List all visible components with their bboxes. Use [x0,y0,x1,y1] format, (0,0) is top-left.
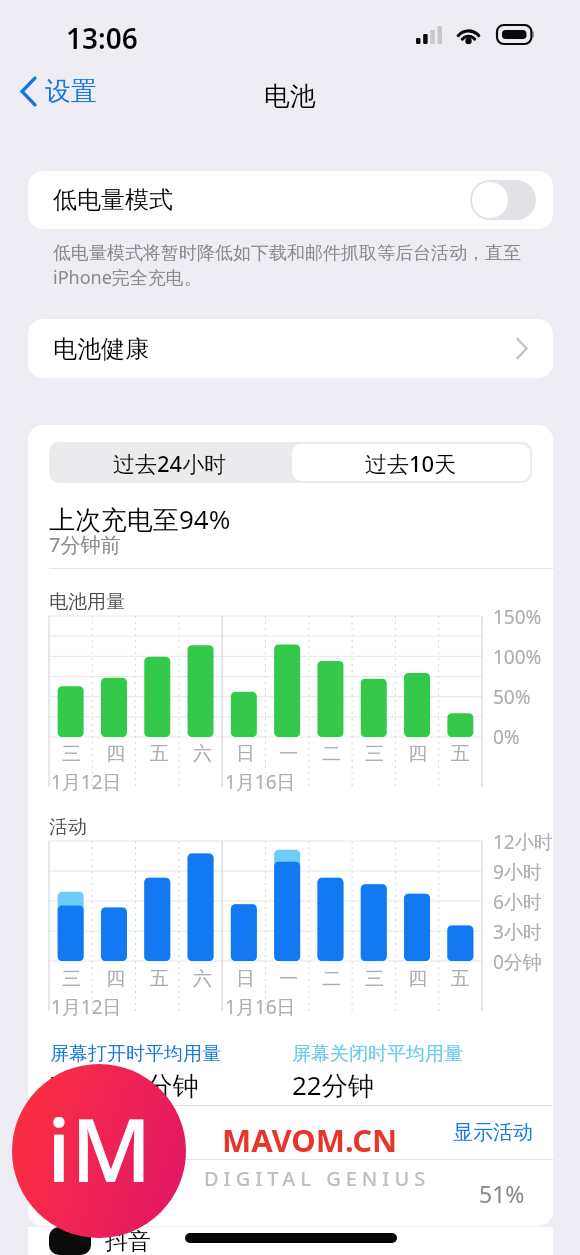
staticText: 三 [365,742,384,766]
staticText: 50% [493,684,531,710]
staticText: 1月16日 [225,994,296,1020]
staticText: 日 [236,967,255,991]
staticText: 二 [322,967,341,991]
staticText: 四 [106,967,125,991]
staticText: 上次充电至94% [49,501,231,537]
staticText: 0分钟 [493,949,542,975]
staticText: 三 [62,742,81,766]
staticText: 12小时 [493,829,553,855]
staticText: 五 [451,967,470,991]
staticText: 电池用量 [49,590,125,614]
staticText: 一 [279,967,298,991]
staticText: 7小时23分钟 [50,1067,199,1103]
staticText: 六 [193,967,212,991]
staticText: 三 [62,967,81,991]
staticText: 四 [408,967,427,991]
staticText: iM [47,1088,152,1208]
staticText: 13:06 [66,19,138,57]
staticText: DIGITAL GENIUS [204,1165,431,1192]
staticText: 四 [408,742,427,766]
staticText: 6小时 [493,889,542,915]
button[interactable]: 显示活动 [453,1120,533,1145]
staticText: 1月16日 [225,769,296,795]
button[interactable]: 过去24小时 [49,442,290,483]
staticText: 活动 [49,815,87,839]
staticText: 过去10天 [365,448,457,478]
button[interactable]: 低电量模式 [28,171,553,229]
staticText: 屏幕打开时平均用量 [50,1042,221,1066]
staticText: 三 [365,967,384,991]
staticText: 五 [150,967,169,991]
staticText: 屏幕关闭时平均用量 [292,1042,463,1066]
staticText: 22分钟 [292,1067,374,1103]
staticText: 设置 [45,75,97,108]
button[interactable]: 电池健康 [28,319,553,378]
staticText: 荣耀 [105,1179,151,1208]
button[interactable]: 抖音 [49,1227,527,1255]
staticText: 二 [322,742,341,766]
staticText: 1月12日 [51,769,122,795]
staticText: 0% [493,724,520,750]
staticText: 150% [493,604,542,630]
staticText: 100% [493,644,542,670]
staticText: 3小时 [493,919,542,945]
other: 电池健康 [516,338,528,359]
staticText: 五 [451,742,470,766]
staticText: 低电量模式将暂时降低如下载和邮件抓取等后台活动，直至iPhone完全充电。 [53,242,531,289]
button[interactable]: 荣耀 [28,1160,553,1226]
staticText: 51% [479,1178,525,1209]
staticText: 六 [193,742,212,766]
staticText: 一 [279,742,298,766]
staticText: 低电量模式 [53,185,173,215]
staticText: 1月12日 [51,994,122,1020]
staticText: 过去24小时 [113,448,227,478]
staticText: 四 [106,742,125,766]
staticText: 按App [49,1117,115,1148]
button[interactable]: 设置 [12,69,105,114]
staticText: MAVOM.CN [222,1119,398,1161]
staticText: 电池 [0,80,580,113]
staticText: 抖音 [105,1227,151,1255]
button[interactable]: 过去10天 [292,444,530,481]
staticText: 日 [236,742,255,766]
staticText: 9小时 [493,859,542,885]
staticText: 7分钟前 [49,531,121,558]
staticText: 电池健康 [53,334,149,364]
button[interactable]: 低电量模式开关 [470,180,536,220]
staticText: 五 [150,742,169,766]
